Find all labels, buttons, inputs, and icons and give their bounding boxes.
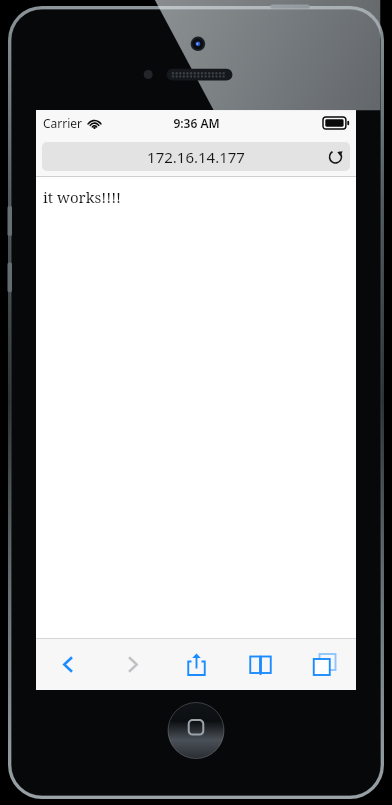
button[interactable]: Reload	[321, 142, 350, 171]
button[interactable]: Tabs	[292, 639, 356, 690]
staticText: 9:36 AM	[173, 115, 220, 131]
staticText: it works!!!!	[43, 187, 122, 207]
staticText: 172.16.14.177	[147, 147, 245, 167]
button[interactable]: Forward	[100, 639, 164, 690]
button[interactable]: Back	[36, 639, 100, 690]
button[interactable]: Share	[164, 639, 228, 690]
button[interactable]: Bookmarks	[228, 639, 292, 690]
staticText: Carrier	[43, 115, 83, 131]
button[interactable]: 172.16.14.177	[42, 142, 350, 171]
